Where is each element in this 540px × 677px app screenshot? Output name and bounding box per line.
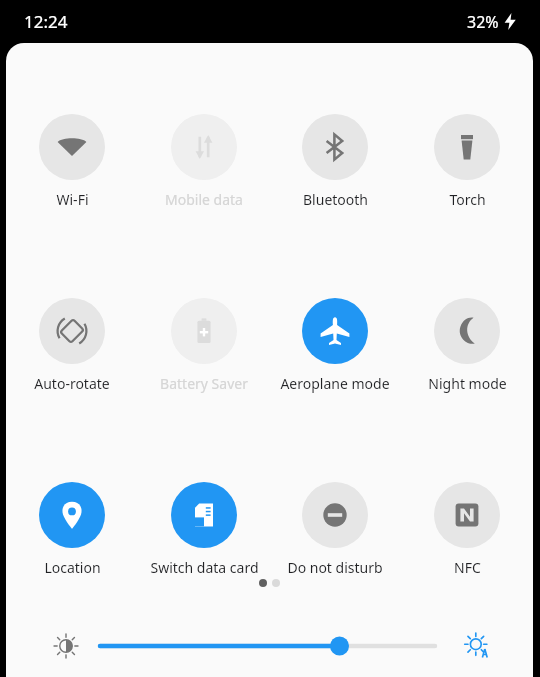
staticText: Battery Saver xyxy=(160,374,248,393)
staticText: 32% xyxy=(467,11,499,33)
staticText: Wi-Fi xyxy=(56,190,89,209)
staticText: Aeroplane mode xyxy=(280,374,390,393)
staticText: Location xyxy=(44,558,101,577)
button[interactable]: Brightness slider xyxy=(100,626,435,666)
staticText: 12:24 xyxy=(24,10,68,33)
staticText: Night mode xyxy=(428,374,507,393)
staticText: Bluetooth xyxy=(303,190,368,209)
button[interactable]: Location xyxy=(10,480,134,579)
button[interactable]: Battery Saver xyxy=(142,296,266,395)
staticText: Do not disturb xyxy=(287,558,383,577)
button[interactable]: Bluetooth xyxy=(273,112,397,211)
staticText: Switch data card xyxy=(150,558,259,577)
button[interactable]: Do not disturb xyxy=(273,480,397,579)
button[interactable]: Night mode xyxy=(405,296,529,395)
button[interactable]: Switch data card xyxy=(142,480,266,579)
staticText: Torch xyxy=(449,190,486,209)
button[interactable]: Torch xyxy=(405,112,529,211)
button[interactable]: Aeroplane mode xyxy=(273,296,397,395)
button[interactable]: Auto-rotate xyxy=(10,296,134,395)
button[interactable]: Mobile data xyxy=(142,112,266,211)
staticText: Auto-rotate xyxy=(34,374,110,393)
button[interactable]: Brightness xyxy=(46,626,86,666)
button[interactable]: Auto brightness xyxy=(457,626,497,666)
staticText: Mobile data xyxy=(165,190,243,209)
button[interactable]: NFC xyxy=(405,480,529,579)
staticText: NFC xyxy=(454,558,481,577)
button[interactable]: Wi-Fi xyxy=(10,112,134,211)
